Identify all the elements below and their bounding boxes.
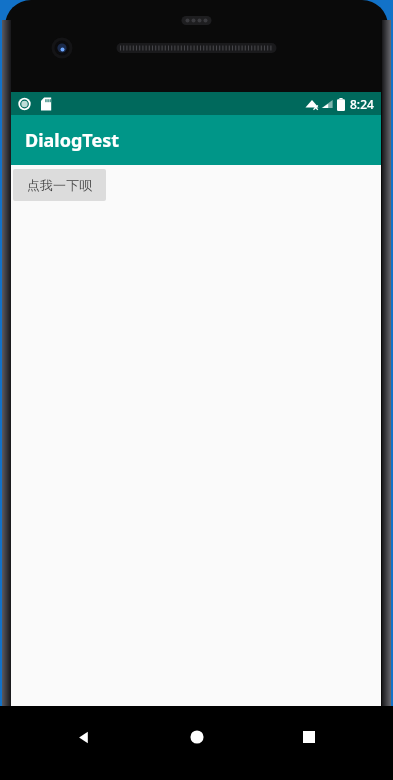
button[interactable]: Recent apps [281,720,337,754]
button[interactable]: Back [56,720,112,754]
staticText: DialogTest [25,128,120,153]
staticText: 8:24 [350,96,374,112]
staticText: 点我一下呗 [27,177,92,193]
button[interactable]: Home [169,720,225,754]
button[interactable]: 点我一下呗 [13,169,106,201]
